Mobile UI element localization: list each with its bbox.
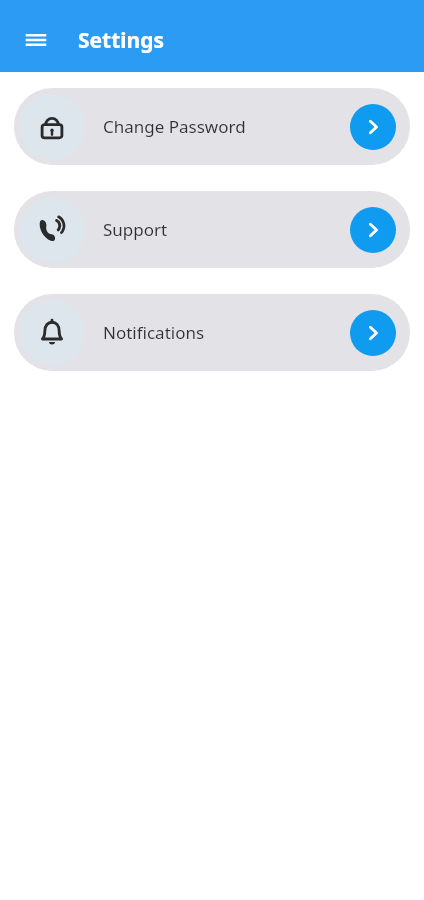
button[interactable]: Change Password xyxy=(14,88,410,165)
button[interactable]: Open Support xyxy=(350,207,396,253)
button[interactable]: Notifications xyxy=(14,294,410,371)
button[interactable]: Open navigation menu xyxy=(16,20,56,60)
button[interactable]: Open Notifications xyxy=(350,310,396,356)
staticText: Change Password xyxy=(103,115,350,138)
button[interactable]: Support xyxy=(14,191,410,268)
staticText: Notifications xyxy=(103,321,350,344)
staticText: Support xyxy=(103,218,350,241)
button[interactable]: Open Change Password xyxy=(350,104,396,150)
staticText: Settings xyxy=(78,26,165,55)
